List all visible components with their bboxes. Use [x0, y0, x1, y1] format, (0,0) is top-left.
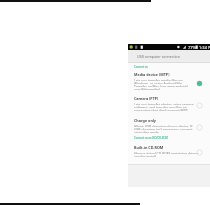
staticText: software, and transfer any files on	[134, 105, 187, 108]
button[interactable]: USB computer connection	[128, 50, 210, 62]
staticText: Transfer on Mac (see www.android.	[134, 84, 189, 87]
staticText: Show a virtual CD-ROM containing drivers	[134, 151, 199, 154]
button[interactable]: Connect as an ISO/CD-ROM	[134, 136, 168, 141]
staticText: 1:34 PM	[199, 45, 210, 50]
staticText: Media device (MTP)	[134, 72, 170, 77]
staticText: 77%	[188, 45, 196, 50]
staticText: Connect as	[134, 65, 148, 69]
button[interactable]: Charge only	[128, 118, 210, 137]
staticText: Camera (PTP)	[134, 96, 159, 101]
button[interactable]: Camera (PTP)	[128, 96, 210, 115]
staticText: Lets you transfer media files on	[134, 78, 183, 81]
button[interactable]: Media device (MTP)	[128, 72, 210, 94]
staticText: Built-in CD-ROM	[134, 145, 164, 150]
staticText: Lets you transfer photos using camera	[134, 102, 194, 105]
staticText: using this mode	[134, 130, 159, 133]
staticText: computers that don't support MTP	[134, 108, 188, 111]
staticText: USB charging isn't necessary, connect	[134, 127, 193, 130]
staticText: Connect as an ISO/CD-ROM	[134, 136, 168, 140]
staticText: com/filetransfer)	[134, 87, 160, 90]
staticText: Windows, or using Android File	[134, 81, 182, 84]
staticText: Charge only	[134, 118, 156, 123]
staticText: used to install	[134, 154, 156, 157]
button[interactable]: Connect as	[134, 65, 148, 70]
button[interactable]: Built-in CD-ROM	[128, 145, 210, 160]
staticText: USB computer connection	[137, 54, 180, 59]
staticText: Allows USB charging of your device. If	[134, 124, 193, 127]
